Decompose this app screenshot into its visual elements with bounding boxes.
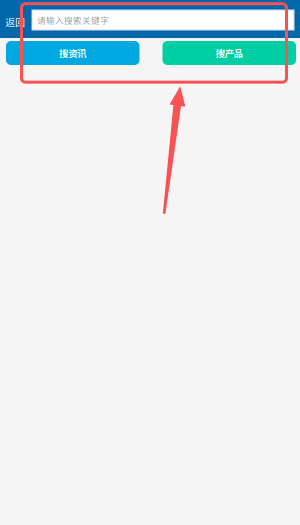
staticText: 请输入搜索关键字: [37, 14, 109, 26]
button[interactable]: 请输入搜索关键字: [32, 9, 300, 29]
button[interactable]: 返回: [0, 0, 32, 38]
button[interactable]: 搜产品: [162, 41, 296, 65]
staticText: 返回: [5, 15, 25, 29]
staticText: 搜产品: [216, 46, 243, 60]
button[interactable]: 搜资讯: [6, 41, 139, 65]
staticText: 搜资讯: [59, 46, 86, 60]
